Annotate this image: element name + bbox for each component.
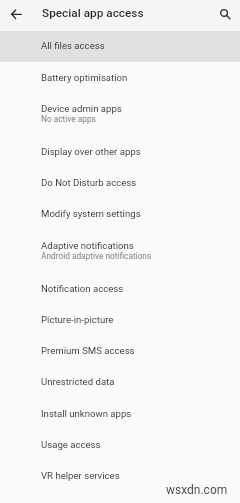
button[interactable]: Usage access bbox=[0, 430, 240, 461]
staticText: Adaptive notifications bbox=[41, 240, 134, 251]
button[interactable]: Battery optimisation bbox=[0, 63, 240, 94]
staticText: VR helper services bbox=[41, 470, 120, 481]
button[interactable]: Picture-in-picture bbox=[0, 305, 240, 336]
staticText: Modify system settings bbox=[41, 208, 141, 219]
button[interactable]: Search bbox=[215, 2, 238, 25]
staticText: Do Not Disturb access bbox=[41, 177, 137, 188]
button[interactable]: Premium SMS access bbox=[0, 336, 240, 367]
button[interactable]: VR helper services bbox=[0, 461, 240, 492]
button[interactable]: All files access bbox=[0, 31, 240, 62]
staticText: Install unknown apps bbox=[41, 408, 132, 419]
button[interactable]: Install unknown apps bbox=[0, 399, 240, 430]
staticText: Premium SMS access bbox=[41, 345, 135, 356]
staticText: Android adaptive notifications bbox=[41, 251, 152, 261]
staticText: Usage access bbox=[41, 439, 101, 450]
button[interactable]: Device admin apps bbox=[0, 94, 240, 137]
staticText: Battery optimisation bbox=[41, 72, 128, 83]
staticText: Display over other apps bbox=[41, 146, 141, 157]
button[interactable]: Modify system settings bbox=[0, 199, 240, 230]
button[interactable]: Unrestricted data bbox=[0, 367, 240, 398]
staticText: Special app access bbox=[42, 6, 144, 20]
staticText: wsxdn.com bbox=[166, 483, 228, 497]
button[interactable]: Navigate up bbox=[5, 3, 28, 26]
staticText: No active apps bbox=[41, 114, 96, 124]
staticText: Unrestricted data bbox=[41, 376, 115, 387]
button[interactable]: Do Not Disturb access bbox=[0, 168, 240, 199]
button[interactable]: Adaptive notifications bbox=[0, 231, 240, 274]
staticText: Picture-in-picture bbox=[41, 314, 114, 325]
staticText: Device admin apps bbox=[41, 103, 122, 114]
button[interactable]: Display over other apps bbox=[0, 137, 240, 168]
staticText: All files access bbox=[41, 40, 105, 51]
staticText: Notification access bbox=[41, 283, 124, 294]
button[interactable]: Notification access bbox=[0, 274, 240, 305]
